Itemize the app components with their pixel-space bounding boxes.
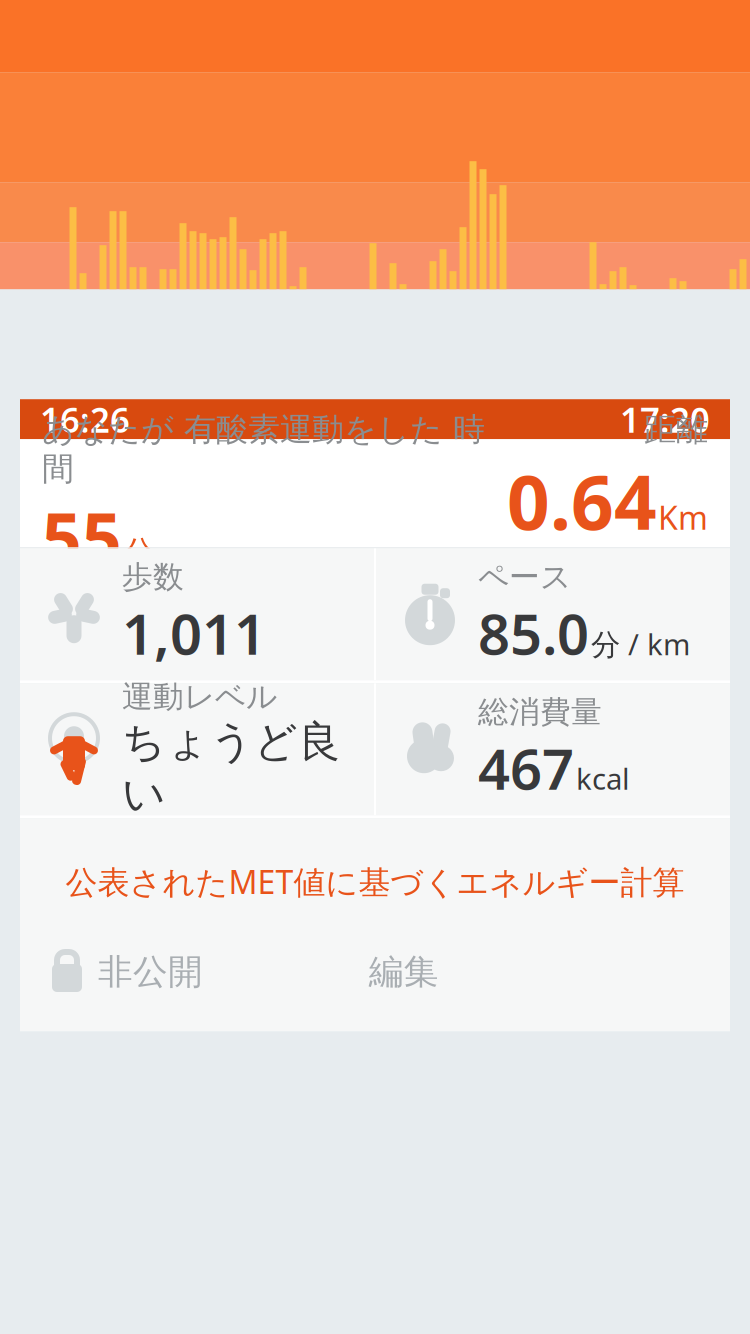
staticText: 85.0 bbox=[478, 596, 589, 670]
staticText: 467 bbox=[478, 731, 574, 805]
staticText: 総消費量 bbox=[478, 693, 602, 731]
staticText: 16:26 bbox=[40, 396, 130, 442]
staticText: 歩数 bbox=[122, 558, 184, 596]
staticText: ちょうど良い bbox=[122, 716, 341, 820]
staticText: 17:20 bbox=[620, 396, 710, 442]
staticText: 運動レベル bbox=[122, 678, 277, 716]
staticText: ペース bbox=[478, 558, 571, 596]
staticText: 0.64 bbox=[507, 451, 657, 550]
staticText: 1,011 bbox=[122, 596, 266, 670]
staticText: 分 bbox=[123, 533, 155, 572]
staticText: 公表されたMET値に基づくエネルギー計算 bbox=[65, 860, 684, 903]
button[interactable]: 運動レベル bbox=[20, 683, 374, 815]
staticText: 距離 bbox=[644, 410, 708, 449]
button[interactable]: 総消費量 bbox=[376, 683, 730, 815]
staticText: あなたが 有酸素運動をした 時間 bbox=[42, 410, 485, 488]
staticText: 編集 bbox=[369, 951, 439, 993]
staticText: Km bbox=[658, 496, 708, 539]
staticText: 分 / km bbox=[591, 624, 690, 663]
button[interactable]: 公表されたMET値に基づくエネルギー計算 bbox=[20, 844, 730, 919]
button[interactable]: ペース bbox=[376, 548, 730, 680]
button[interactable]: 非公開 bbox=[20, 941, 203, 1003]
button[interactable]: 編集 bbox=[329, 941, 479, 1003]
button[interactable]: 歩数 bbox=[20, 548, 374, 680]
staticText: 55 bbox=[42, 490, 122, 583]
staticText: kcal bbox=[576, 759, 630, 798]
staticText: 非公開 bbox=[98, 951, 203, 993]
